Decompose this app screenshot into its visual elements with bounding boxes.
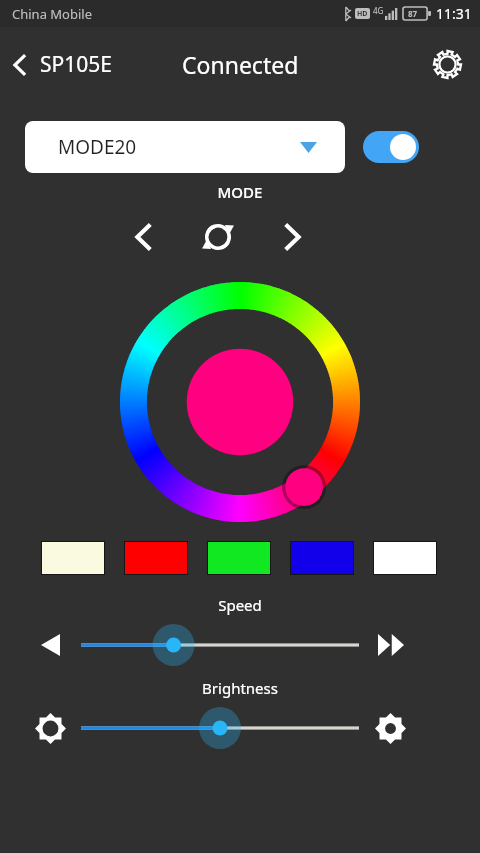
staticText: MODE	[0, 182, 480, 202]
staticText: Connected	[182, 49, 299, 80]
button[interactable]: Decrease brightness	[28, 706, 72, 750]
button[interactable]: Color wheel	[120, 282, 360, 522]
other: Back	[12, 52, 28, 78]
button[interactable]: Increase speed	[371, 625, 411, 665]
button[interactable]	[81, 708, 359, 748]
button[interactable]: Decrease speed	[30, 625, 70, 665]
staticText: Brightness	[0, 678, 480, 698]
staticText: Speed	[0, 595, 480, 615]
staticText: HD	[357, 9, 368, 19]
button[interactable]: Back	[0, 42, 120, 87]
button[interactable]	[81, 625, 359, 665]
button[interactable]: Increase brightness	[368, 706, 412, 750]
button[interactable]: Previous mode	[122, 215, 166, 259]
button[interactable]: Settings	[430, 47, 480, 81]
staticText: MODE20	[58, 134, 137, 160]
button[interactable]: Power toggle	[363, 131, 419, 163]
button[interactable]: MODE20	[25, 121, 345, 173]
button[interactable]: Refresh mode	[194, 213, 242, 261]
staticText: 11:31	[436, 4, 472, 23]
staticText: SP105E	[40, 50, 112, 79]
staticText: 87	[408, 8, 418, 19]
staticText: 4G	[373, 5, 384, 16]
button[interactable]: Next mode	[270, 215, 314, 259]
staticText: China Mobile	[12, 5, 93, 23]
